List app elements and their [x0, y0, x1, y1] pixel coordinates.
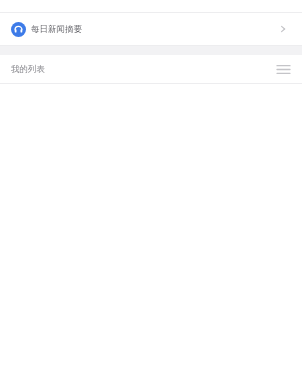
button[interactable]: 每日新闻摘要 [0, 13, 302, 45]
staticText: 每日新闻摘要 [31, 24, 82, 35]
other: Open [274, 20, 292, 38]
button[interactable]: 我的列表 [0, 55, 302, 83]
button[interactable]: Sort list [274, 60, 292, 78]
staticText: 我的列表 [11, 64, 45, 75]
